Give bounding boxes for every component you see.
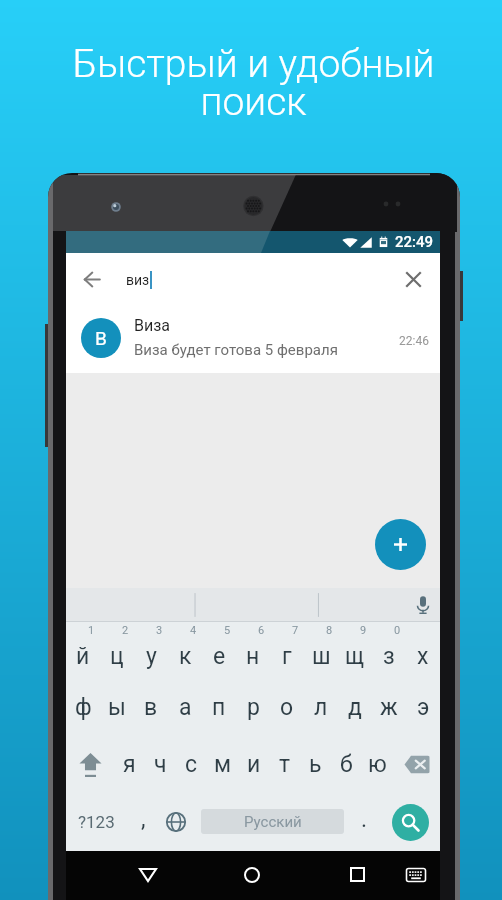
staticText: , — [141, 806, 146, 833]
staticText: 22:49 — [395, 233, 434, 251]
button[interactable]: и — [238, 736, 269, 793]
staticText: р — [247, 694, 260, 721]
button[interactable]: 4 — [168, 622, 202, 679]
staticText: . — [361, 806, 368, 833]
button[interactable]: т — [269, 736, 300, 793]
button[interactable]: ы — [100, 679, 134, 736]
staticText: к — [179, 643, 192, 670]
staticText: Быстрый и удобный поиск — [72, 41, 435, 124]
staticText: Виза будет готова 5 февраля — [134, 341, 338, 359]
button[interactable]: 7 — [270, 622, 304, 679]
staticText: 7 — [292, 624, 299, 637]
staticText: 6 — [258, 624, 265, 637]
button[interactable]: Switch keyboard — [325, 851, 440, 900]
staticText: Русский — [244, 813, 302, 831]
staticText: я — [123, 751, 136, 778]
button[interactable]: ч — [145, 736, 176, 793]
staticText: щ — [345, 643, 365, 670]
staticText: В — [95, 327, 107, 349]
staticText: б — [340, 751, 353, 778]
staticText: ч — [154, 751, 167, 778]
staticText: х — [417, 643, 429, 670]
staticText: ю — [368, 751, 387, 778]
button[interactable]: ?123 — [66, 793, 127, 851]
button[interactable]: о — [270, 679, 304, 736]
staticText: Виза — [134, 316, 171, 335]
button[interactable]: Shift — [66, 736, 114, 793]
staticText: ь — [309, 751, 322, 778]
staticText: о — [280, 694, 294, 721]
button[interactable]: 5 — [202, 622, 236, 679]
button[interactable]: В — [66, 306, 440, 373]
staticText: 4 — [190, 624, 197, 637]
staticText: 0 — [394, 624, 401, 637]
staticText: ш — [312, 643, 331, 670]
button[interactable]: б — [331, 736, 362, 793]
staticText: д — [348, 694, 362, 721]
button[interactable]: ж — [372, 679, 406, 736]
staticText: ж — [380, 694, 398, 721]
button[interactable]: Русский — [201, 809, 344, 834]
button[interactable]: р — [236, 679, 270, 736]
button[interactable]: 2 — [100, 622, 134, 679]
staticText: й — [76, 643, 90, 670]
button[interactable]: Back — [66, 253, 117, 306]
staticText: з — [383, 643, 395, 670]
button[interactable]: Add — [375, 519, 426, 570]
button[interactable]: . — [348, 793, 381, 851]
button[interactable]: п — [202, 679, 236, 736]
staticText: г — [282, 643, 292, 670]
button[interactable]: Voice input — [406, 588, 440, 622]
button[interactable]: Clear search — [386, 253, 440, 306]
staticText: с — [185, 751, 198, 778]
button[interactable]: л — [304, 679, 338, 736]
staticText: 8 — [326, 624, 333, 637]
staticText: п — [212, 694, 226, 721]
staticText: ы — [108, 694, 126, 721]
staticText: т — [279, 751, 291, 778]
staticText: ц — [110, 643, 124, 670]
button[interactable]: Home — [210, 851, 294, 900]
staticText: а — [179, 694, 192, 721]
button[interactable]: д — [338, 679, 372, 736]
staticText: виз — [126, 272, 150, 288]
button[interactable]: 0 — [372, 622, 406, 679]
button[interactable]: 1 — [66, 622, 100, 679]
staticText: 2 — [122, 624, 129, 637]
button[interactable]: Search — [381, 793, 440, 851]
staticText: е — [213, 643, 226, 670]
button[interactable]: в — [134, 679, 168, 736]
staticText: 3 — [156, 624, 163, 637]
staticText: 22:46 — [399, 334, 429, 348]
button[interactable]: а — [168, 679, 202, 736]
button[interactable]: х — [406, 622, 440, 679]
button[interactable]: Back — [106, 851, 190, 900]
button[interactable]: я — [114, 736, 145, 793]
staticText: у — [146, 643, 157, 670]
button[interactable]: с — [176, 736, 207, 793]
staticText: 9 — [360, 624, 367, 637]
staticText: 5 — [224, 624, 231, 637]
staticText: м — [214, 751, 232, 778]
button[interactable]: 8 — [304, 622, 338, 679]
staticText: л — [314, 694, 328, 721]
button[interactable]: Change language — [159, 793, 192, 851]
button[interactable]: Recent apps — [315, 851, 399, 900]
button[interactable]: 6 — [236, 622, 270, 679]
staticText: н — [246, 643, 260, 670]
button[interactable]: э — [406, 679, 440, 736]
staticText: 1 — [88, 624, 95, 637]
button[interactable]: ф — [66, 679, 100, 736]
staticText: ?123 — [78, 812, 115, 832]
button[interactable]: 9 — [338, 622, 372, 679]
button[interactable]: , — [127, 793, 159, 851]
staticText: и — [247, 751, 261, 778]
button[interactable]: 3 — [134, 622, 168, 679]
staticText: в — [144, 694, 158, 721]
button[interactable]: ю — [362, 736, 393, 793]
button[interactable]: ь — [300, 736, 331, 793]
staticText: э — [417, 694, 430, 721]
button[interactable]: Backspace — [393, 736, 440, 793]
button[interactable]: м — [207, 736, 238, 793]
staticText: ф — [75, 694, 92, 721]
